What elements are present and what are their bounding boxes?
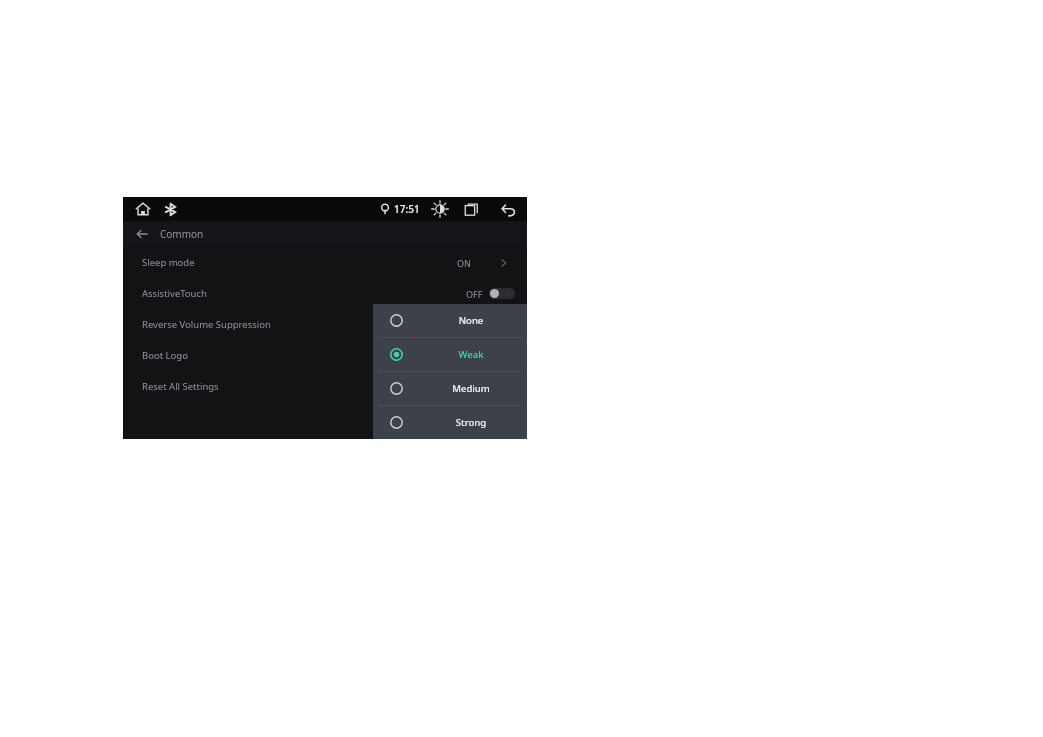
button[interactable]: None [373,304,527,337]
button[interactable]: Recent apps [465,203,478,216]
button[interactable]: Reverse Volume Suppression [123,309,527,340]
staticText: Weak [432,348,510,361]
button[interactable]: Navigate up [136,228,148,240]
staticText: Sleep mode [142,256,195,269]
staticText: Reverse Volume Suppression [142,318,271,331]
staticText: 17:51 [394,202,420,216]
button[interactable]: Reset All Settings [123,371,527,402]
button[interactable]: Back [501,202,516,217]
staticText: OFF [466,288,483,300]
button[interactable]: Weak [373,338,527,371]
staticText: Common [160,227,204,241]
button[interactable]: Brightness [431,200,449,218]
button[interactable]: Medium [373,372,527,405]
button[interactable]: Sleep mode [123,247,527,278]
button[interactable]: Home [135,201,151,217]
staticText: Reset All Settings [142,380,219,393]
button[interactable]: Bluetooth [164,203,177,216]
staticText: Boot Logo [142,349,188,362]
staticText: None [432,314,510,327]
button[interactable]: AssistiveTouch [123,278,527,309]
staticText: Medium [432,382,510,395]
staticText: ON [457,257,471,269]
staticText: Strong [432,416,510,429]
button[interactable]: Boot Logo [123,340,527,371]
button[interactable]: Strong [373,406,527,439]
staticText: AssistiveTouch [142,287,207,300]
